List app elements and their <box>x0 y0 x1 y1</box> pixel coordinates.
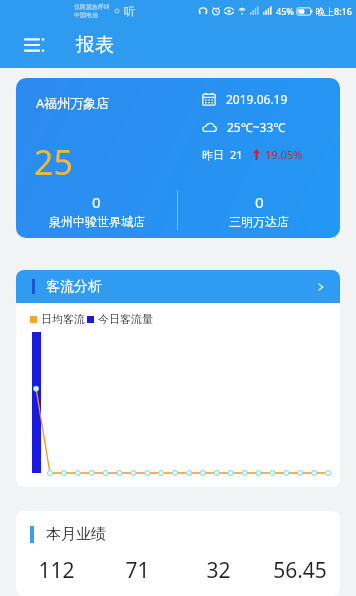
staticText: 泉州中骏世界城店 <box>49 214 145 229</box>
staticText: 2019.06.19 <box>226 91 288 107</box>
staticText: 日均客流 <box>41 312 85 326</box>
staticText: 报表 <box>76 33 114 57</box>
staticText: 0 <box>92 192 101 212</box>
staticText: 客流分析 <box>46 278 102 296</box>
button[interactable]: 客流分析 <box>16 270 340 303</box>
staticText: 中国电信 <box>74 11 98 19</box>
staticText: 仅限紧急呼叫 <box>74 3 110 11</box>
button[interactable]: Menu <box>18 28 52 62</box>
staticText: 71 <box>125 556 150 585</box>
staticText: 32 <box>206 556 231 585</box>
button[interactable]: A福州万象店 <box>16 78 340 238</box>
staticText: 45% <box>276 5 294 17</box>
button[interactable]: 本月业绩 <box>16 511 340 596</box>
staticText: A福州万象店 <box>36 94 110 112</box>
staticText: 19.05% <box>265 147 303 162</box>
staticText: 晚上8:16 <box>316 5 352 17</box>
staticText: 25 <box>34 139 73 185</box>
staticText: 56.45 <box>273 556 327 585</box>
staticText: 21 <box>230 147 243 162</box>
staticText: 昨日 <box>202 148 224 162</box>
staticText: 112 <box>38 556 75 585</box>
staticText: 听 <box>124 4 135 18</box>
staticText: 0 <box>255 192 264 212</box>
staticText: 25℃~33℃ <box>227 119 286 135</box>
staticText: 三明万达店 <box>229 214 289 229</box>
staticText: 本月业绩 <box>46 525 106 544</box>
staticText: 今日客流量 <box>98 312 153 326</box>
